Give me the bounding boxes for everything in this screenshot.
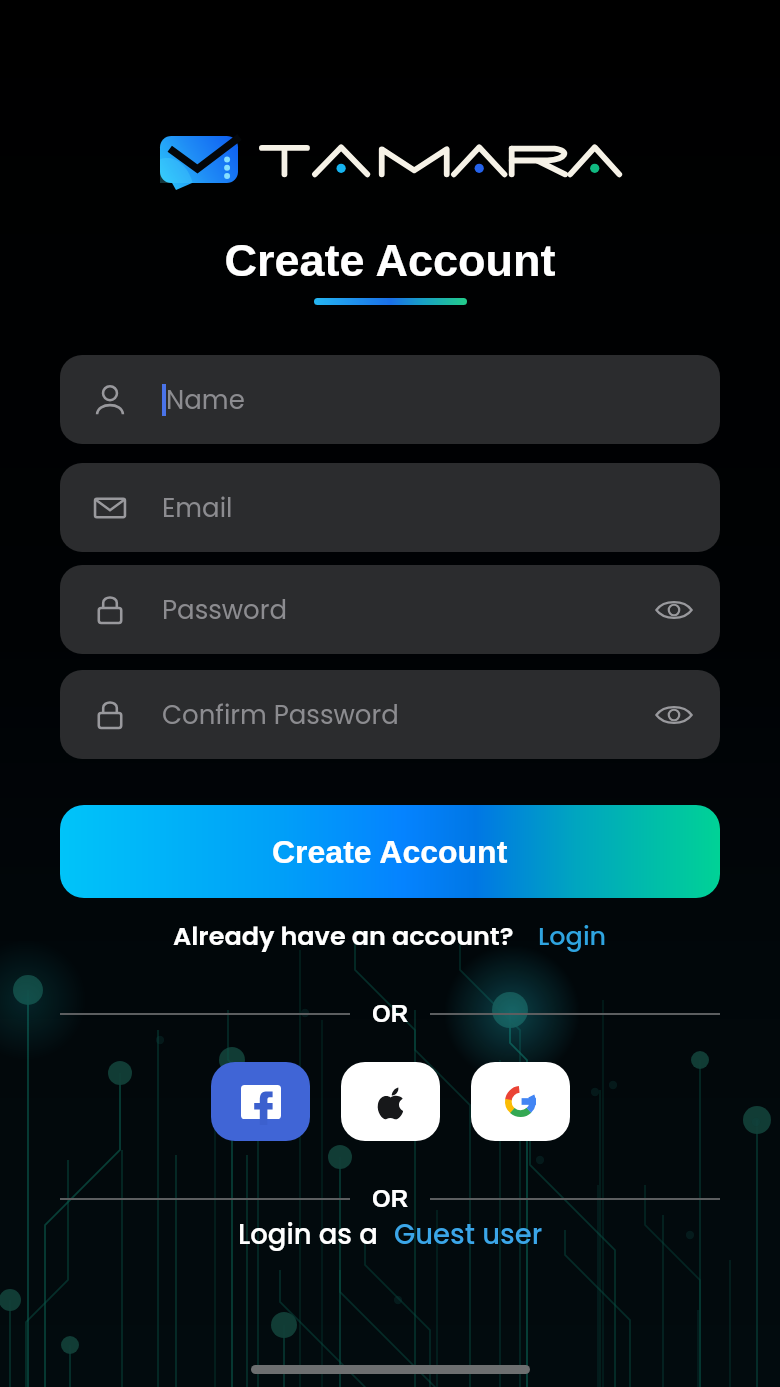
staticText: Guest user — [394, 1215, 543, 1253]
staticText: OR — [372, 1000, 408, 1027]
button[interactable]: Create Account — [60, 805, 720, 898]
button[interactable]: Sign in with Apple — [341, 1062, 440, 1141]
staticText: Already have an account? — [173, 918, 514, 954]
staticText: Create Account — [272, 834, 508, 870]
staticText: Name — [166, 382, 245, 418]
button[interactable]: Sign in with Google — [471, 1062, 570, 1141]
staticText: Login — [538, 918, 607, 954]
button[interactable]: Show password — [650, 691, 698, 739]
button[interactable]: Name — [60, 355, 720, 444]
button[interactable]: Password — [60, 565, 720, 654]
button[interactable]: Sign in with Facebook — [211, 1062, 310, 1141]
staticText: Confirm Password — [162, 697, 399, 733]
staticText: Password — [162, 592, 288, 628]
button[interactable]: Show password — [650, 586, 698, 634]
staticText: Create Account — [0, 235, 780, 285]
button[interactable]: Confirm Password — [60, 670, 720, 759]
button[interactable]: Login — [538, 918, 607, 954]
staticText: Email — [162, 490, 233, 526]
button[interactable]: Guest user — [394, 1215, 543, 1253]
staticText: Login as a — [238, 1215, 378, 1253]
staticText: OR — [372, 1185, 408, 1212]
button[interactable]: Email — [60, 463, 720, 552]
